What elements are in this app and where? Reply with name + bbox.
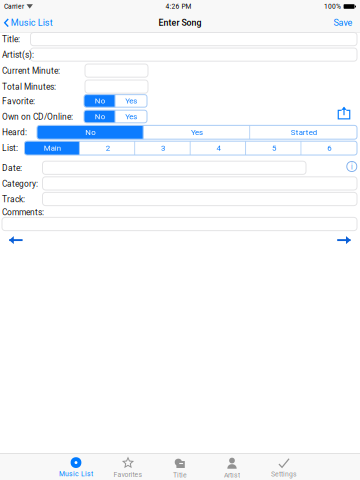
button[interactable]: 5 bbox=[246, 141, 302, 155]
staticText: Yes bbox=[191, 128, 203, 137]
staticText: 4 bbox=[216, 143, 220, 153]
staticText: Save bbox=[333, 17, 352, 28]
button[interactable]: 4 bbox=[191, 141, 246, 155]
button[interactable]: Yes bbox=[115, 110, 147, 123]
staticText: Yes bbox=[125, 112, 137, 121]
staticText: 3 bbox=[161, 143, 165, 153]
staticText: 4:26 PM bbox=[165, 3, 191, 10]
staticText: Category: bbox=[2, 179, 38, 189]
button[interactable]: No bbox=[84, 95, 115, 107]
button[interactable]: 6 bbox=[302, 141, 357, 155]
button[interactable]: Title bbox=[154, 453, 206, 480]
button[interactable]: Main bbox=[24, 141, 80, 155]
staticText: Settings bbox=[271, 470, 297, 478]
button[interactable]: Information bbox=[347, 161, 357, 171]
staticText: 5 bbox=[272, 143, 276, 153]
button[interactable]: 2 bbox=[80, 141, 135, 155]
button[interactable]: No bbox=[37, 125, 144, 139]
button[interactable]: Yes bbox=[115, 95, 147, 107]
button[interactable]: Yes bbox=[144, 125, 250, 139]
staticText: Music List bbox=[11, 17, 53, 28]
staticText: Favorites bbox=[113, 471, 142, 479]
staticText: Artist bbox=[224, 471, 240, 479]
staticText: Own on CD/Online: bbox=[2, 112, 73, 122]
staticText: Heard: bbox=[2, 127, 27, 137]
staticText: Yes bbox=[125, 96, 137, 105]
button[interactable]: Started bbox=[250, 125, 357, 139]
staticText: Enter Song bbox=[158, 18, 201, 28]
button[interactable]: Favorites bbox=[102, 453, 154, 480]
staticText: Current Minute: bbox=[2, 66, 60, 76]
staticText: Carrier bbox=[4, 3, 24, 10]
staticText: Total Minutes: bbox=[2, 82, 56, 92]
staticText: Main bbox=[44, 143, 61, 153]
staticText: i bbox=[351, 161, 353, 172]
staticText: 2 bbox=[106, 143, 110, 153]
staticText: No bbox=[95, 96, 105, 105]
button[interactable]: Artist bbox=[206, 453, 258, 480]
button[interactable]: Settings bbox=[258, 453, 310, 480]
button[interactable]: Share bbox=[337, 106, 351, 120]
staticText: Artist(s): bbox=[2, 50, 34, 60]
button[interactable]: No bbox=[84, 110, 115, 123]
staticText: 6 bbox=[327, 143, 331, 153]
staticText: Title: bbox=[2, 35, 20, 44]
staticText: Title bbox=[173, 471, 187, 479]
button[interactable]: Save bbox=[328, 13, 360, 32]
button[interactable]: Music List bbox=[0, 13, 59, 32]
button[interactable]: Next song bbox=[336, 236, 351, 245]
button[interactable]: Previous song bbox=[9, 236, 24, 245]
staticText: Favorite: bbox=[2, 96, 35, 106]
staticText: No bbox=[85, 128, 95, 137]
button[interactable]: Music List bbox=[50, 453, 102, 480]
staticText: List: bbox=[2, 143, 18, 153]
staticText: Track: bbox=[2, 194, 25, 204]
staticText: No bbox=[95, 112, 105, 121]
staticText: 100% bbox=[324, 3, 341, 10]
staticText: Date: bbox=[2, 163, 22, 173]
staticText: Comments: bbox=[2, 208, 44, 217]
button[interactable]: 3 bbox=[135, 141, 191, 155]
staticText: Started bbox=[291, 128, 317, 137]
staticText: Music List bbox=[59, 470, 93, 478]
